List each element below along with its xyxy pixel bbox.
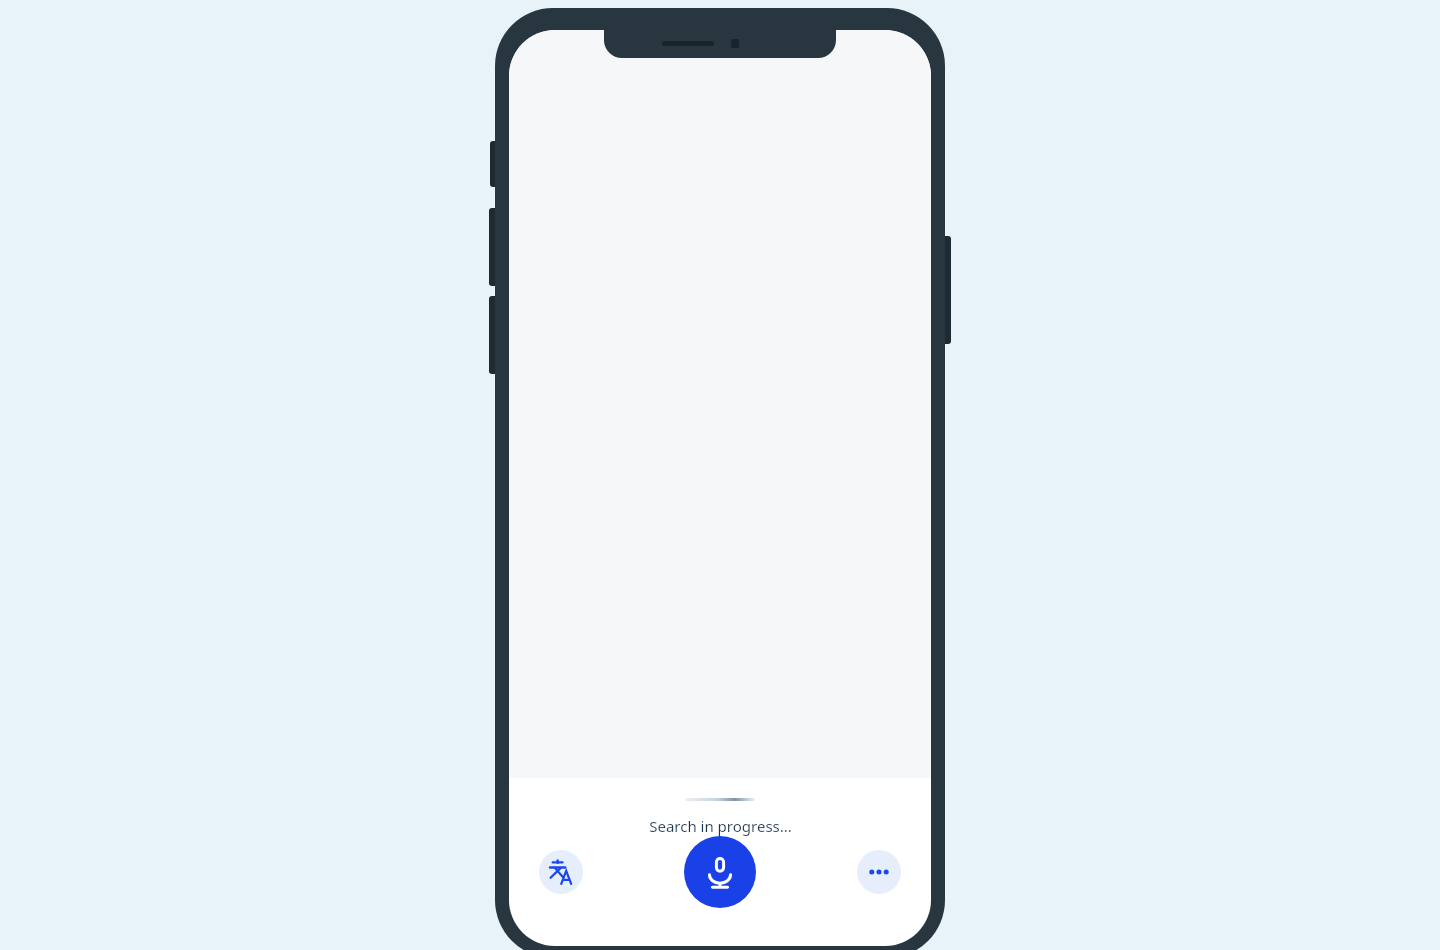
button[interactable]: More options [857,850,901,894]
button[interactable]: Translate [539,850,583,894]
button[interactable]: Voice search [684,836,756,908]
staticText: Search in progress... [649,816,792,836]
